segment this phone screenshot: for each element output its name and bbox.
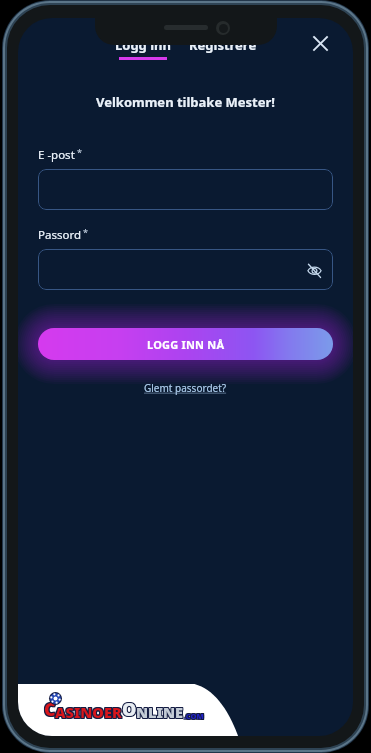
staticText: NLINE [135, 701, 182, 721]
staticText: ASINOER [56, 701, 123, 721]
staticText: O [121, 696, 136, 721]
staticText: C [44, 696, 56, 721]
staticText: .COM [185, 710, 205, 720]
staticText: O [122, 696, 137, 721]
staticText: C [44, 698, 56, 723]
staticText: NLINE [136, 703, 183, 723]
button[interactable] [38, 169, 333, 210]
button[interactable]: Registrere [187, 36, 259, 54]
staticText: ASINOER [56, 702, 123, 722]
staticText: O [123, 696, 138, 721]
button[interactable]: Show password [301, 257, 327, 283]
staticText: C [45, 696, 57, 721]
staticText: .COM [184, 711, 204, 721]
staticText: E -post [38, 147, 75, 163]
staticText: C [45, 697, 57, 722]
staticText: O [123, 698, 138, 723]
staticText: C [43, 696, 55, 721]
staticText: .COM [183, 712, 203, 722]
button[interactable]: Glemt passordet? [144, 381, 227, 395]
staticText: ASINOER [54, 702, 121, 722]
staticText: NLINE [136, 701, 183, 721]
staticText: NLINE [136, 702, 183, 722]
staticText: ASINOER [55, 701, 122, 721]
staticText: O [123, 697, 138, 722]
staticText: Registrere [189, 36, 257, 54]
staticText: ASINOER [55, 702, 122, 722]
staticText: LOGG INN NÅ [147, 337, 225, 352]
staticText: .COM [183, 710, 203, 720]
staticText: C [45, 698, 57, 723]
staticText: .COM [184, 710, 204, 720]
staticText: Velkommen tilbake Mester! [18, 93, 353, 111]
button[interactable]: Close [302, 25, 338, 61]
staticText: Logg inn [115, 36, 171, 54]
staticText: .COM [184, 712, 204, 722]
staticText: .COM [183, 711, 203, 721]
staticText: O [121, 697, 136, 722]
staticText: * [77, 146, 82, 158]
staticText: * [83, 226, 88, 238]
staticText: Passord [38, 227, 81, 243]
staticText: .COM [185, 712, 205, 722]
button[interactable]: LOGG INN NÅ [38, 328, 333, 360]
staticText: NLINE [137, 702, 184, 722]
staticText: C [43, 698, 55, 723]
staticText: C [43, 697, 55, 722]
staticText: O [122, 698, 137, 723]
staticText: .COM [185, 711, 205, 721]
staticText: ASINOER [54, 701, 121, 721]
staticText: O [121, 698, 136, 723]
staticText: NLINE [137, 701, 184, 721]
staticText: C [44, 697, 56, 722]
staticText: NLINE [135, 703, 182, 723]
button[interactable]: Logg inn [113, 36, 173, 60]
staticText: ASINOER [55, 703, 122, 723]
button[interactable]: Show password [38, 249, 333, 290]
staticText: ASINOER [54, 703, 121, 723]
staticText: NLINE [137, 703, 184, 723]
staticText: ASINOER [56, 703, 123, 723]
staticText: NLINE [135, 702, 182, 722]
staticText: O [122, 697, 137, 722]
